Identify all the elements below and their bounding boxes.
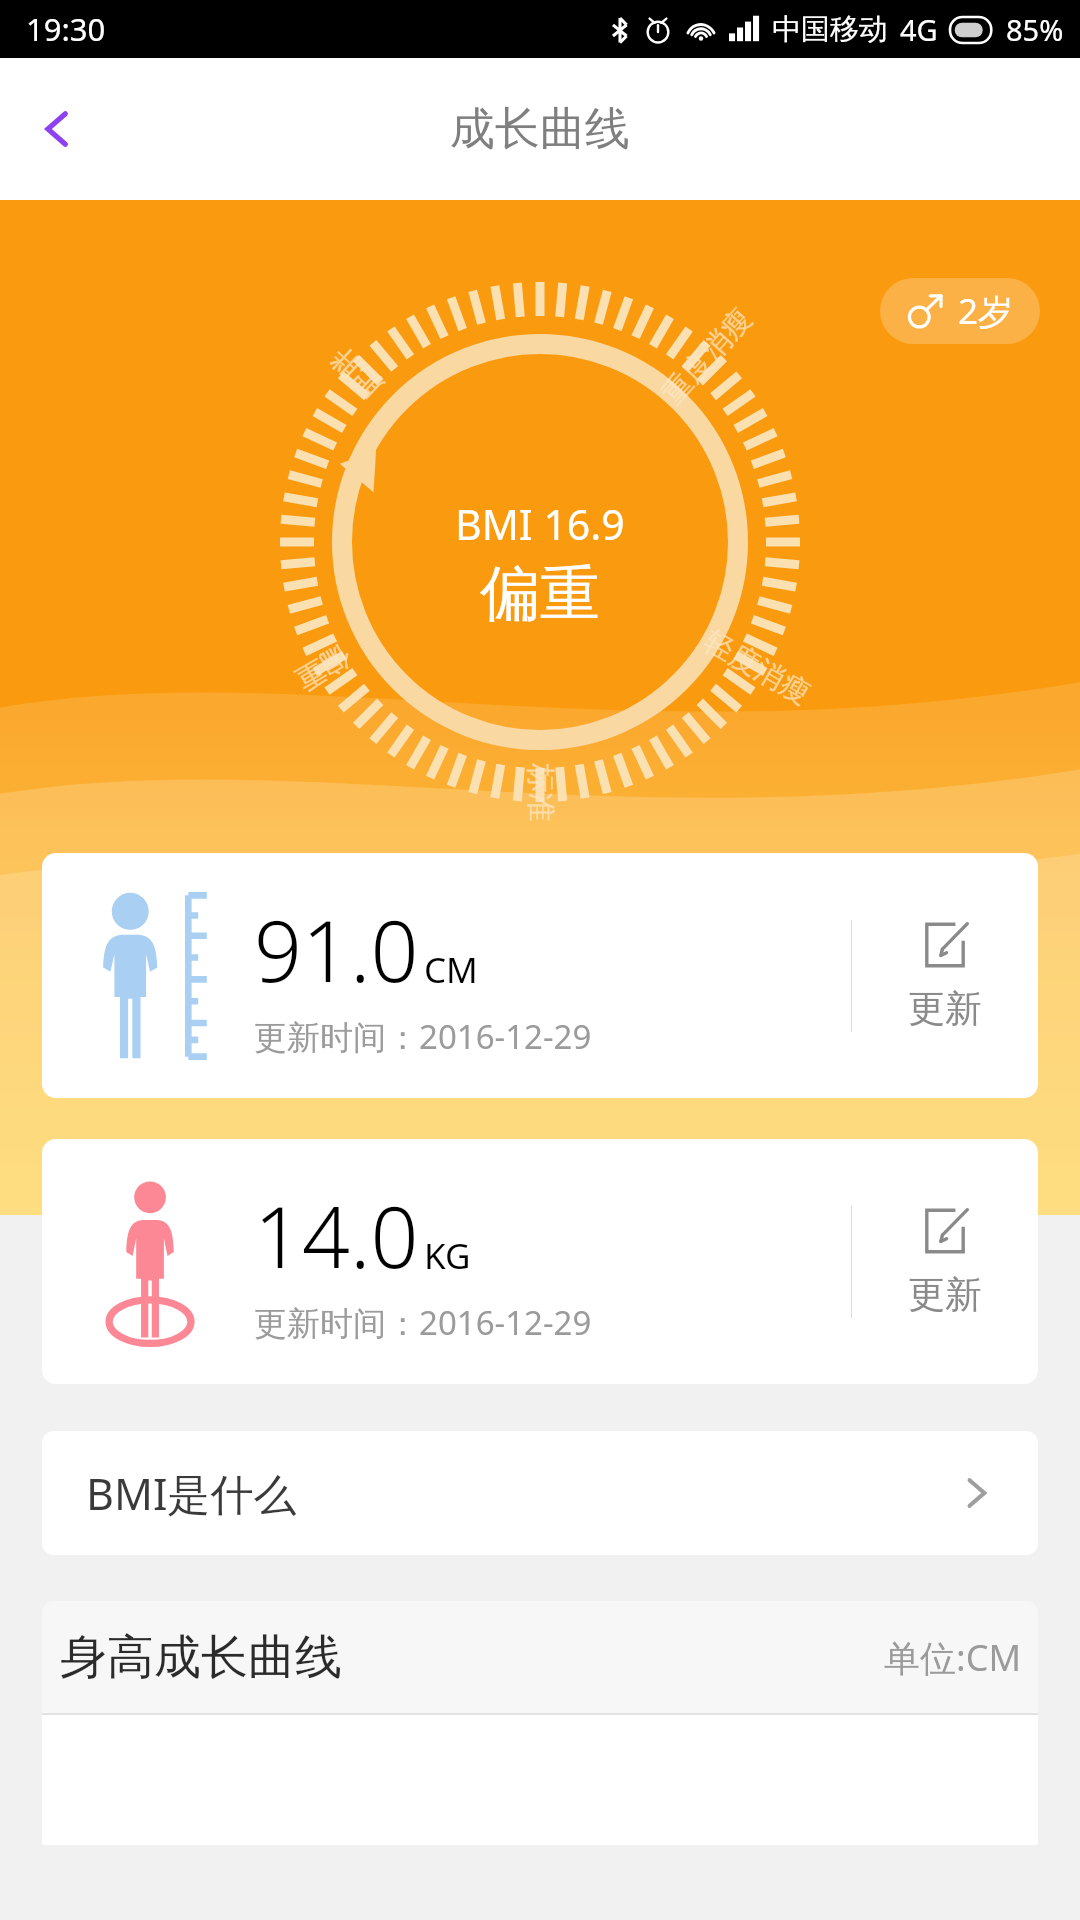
staticText: 更新 bbox=[908, 985, 982, 1032]
staticText: 更新时间：2016-12-29 bbox=[254, 1300, 592, 1345]
staticText: 标准 bbox=[521, 763, 558, 821]
staticText: BMI是什么 bbox=[86, 1464, 297, 1523]
staticText: CM bbox=[424, 946, 478, 994]
button[interactable]: 14.0 bbox=[42, 1139, 1038, 1384]
staticText: 14.0 bbox=[254, 1178, 419, 1292]
button[interactable]: 2岁 bbox=[880, 278, 1040, 344]
staticText: 更新 bbox=[908, 1271, 982, 1318]
staticText: 中国移动 bbox=[772, 11, 888, 48]
staticText: KG bbox=[424, 1232, 471, 1280]
staticText: 单位:CM bbox=[884, 1633, 1022, 1682]
staticText: 偏重 bbox=[480, 556, 600, 632]
button[interactable]: 91.0 bbox=[42, 853, 1038, 1098]
staticText: 4G bbox=[900, 10, 938, 49]
staticText: 19:30 bbox=[26, 8, 106, 50]
staticText: 更新时间：2016-12-29 bbox=[254, 1014, 592, 1059]
staticText: 轻度消瘦 bbox=[697, 622, 816, 712]
staticText: BMI 16.9 bbox=[455, 496, 625, 552]
other: More bbox=[960, 1477, 992, 1509]
staticText: 85% bbox=[1006, 10, 1064, 49]
staticText: 重度消瘦 bbox=[654, 301, 759, 412]
staticText: 成长曲线 bbox=[450, 101, 630, 158]
staticText: 2岁 bbox=[958, 287, 1014, 335]
staticText: 偏重 bbox=[289, 637, 357, 698]
button[interactable]: Back bbox=[14, 86, 100, 172]
staticText: 91.0 bbox=[254, 892, 419, 1006]
staticText: 身高成长曲线 bbox=[60, 1628, 342, 1687]
button[interactable]: BMI是什么 bbox=[42, 1431, 1038, 1555]
staticText: 肥胖 bbox=[323, 339, 391, 406]
